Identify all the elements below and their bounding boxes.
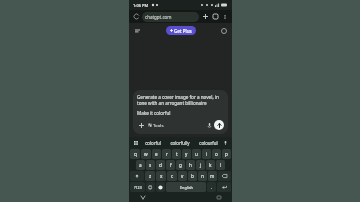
button[interactable]: . [207,182,216,192]
button[interactable]: l [216,160,225,170]
button[interactable]: colourful [194,137,222,148]
staticText: q [134,151,137,157]
button[interactable]: Enter [217,182,231,192]
button[interactable]: a [136,160,145,170]
staticText: i [206,151,208,157]
button[interactable]: x [156,171,166,181]
button[interactable]: Voice typing [222,139,229,146]
button[interactable]: ?123 [130,182,145,192]
button[interactable]: f [166,160,175,170]
button[interactable]: chatgpt.com [142,12,199,22]
button[interactable]: Clipboard [132,139,139,146]
button[interactable]: Shift [130,171,144,181]
staticText: p [225,151,228,157]
button[interactable]: Hide keyboard [130,193,155,201]
button[interactable]: i [202,149,211,159]
staticText: . [211,184,213,190]
staticText: ?123 [134,185,142,190]
button[interactable]: w [141,149,151,159]
button[interactable]: colorful [139,137,166,148]
button[interactable]: Emoji [146,182,155,192]
button[interactable]: z [145,171,155,181]
button[interactable]: o [212,149,221,159]
button[interactable]: t [172,149,181,159]
button[interactable]: Menu [133,26,142,35]
staticText: Generate a cover image for a novel, in t… [137,94,224,106]
button[interactable]: c [167,171,177,181]
button[interactable]: r [162,149,171,159]
staticText: s [149,162,152,168]
staticText: l [220,162,222,168]
button[interactable]: h [186,160,195,170]
button[interactable]: d [156,160,165,170]
button[interactable]: Switch keyboard [206,193,231,201]
button[interactable]: colorfully [166,137,194,148]
staticText: colorfully [170,140,190,146]
button[interactable]: New chat [219,26,228,35]
button[interactable]: q [130,149,140,159]
button[interactable]: n [198,171,207,181]
button[interactable]: Attach [137,121,146,130]
button[interactable]: m [208,171,217,181]
staticText: 1:06 PM [133,3,149,8]
staticText: colourful [199,140,218,146]
staticText: colorful [145,140,161,146]
staticText: ☺ [148,185,153,190]
button[interactable]: s [146,160,155,170]
button[interactable]: v [178,171,187,181]
staticText: Make it colorful [137,110,171,116]
button[interactable]: More options [221,13,229,21]
staticText: n [201,173,204,179]
button[interactable]: Tools [147,121,165,129]
staticText: j [200,162,202,168]
button[interactable]: English [166,182,206,192]
staticText: v [181,173,184,179]
button[interactable]: e [152,149,161,159]
button[interactable]: Assistant [156,182,165,192]
button[interactable]: Get Plus [166,26,196,35]
button[interactable]: k [206,160,215,170]
staticText: k [209,162,212,168]
staticText: e [155,151,158,157]
staticText: h [189,162,192,168]
staticText: English [180,185,193,190]
button[interactable]: New tab [201,12,210,21]
staticText: u [195,151,198,157]
staticText: a [139,162,142,168]
staticText: g [179,162,182,168]
button[interactable]: Reload [132,12,141,21]
staticText: d [159,162,162,168]
staticText: Get Plus [174,28,192,34]
staticText: t [176,151,178,157]
staticText: b [191,173,194,179]
staticText: chatgpt.com [145,14,172,20]
button[interactable]: j [196,160,205,170]
button[interactable]: y [182,149,191,159]
staticText: f [170,162,172,168]
button[interactable]: Generate a cover image for a novel, in t… [133,90,228,134]
staticText: x [160,173,163,179]
staticText: c [171,173,174,179]
button[interactable]: u [192,149,201,159]
button[interactable]: b [188,171,197,181]
staticText: y [185,151,188,157]
staticText: o [215,151,218,157]
button[interactable]: Backspace [218,171,231,181]
staticText: Tools [153,122,164,128]
staticText: r [166,151,168,157]
button[interactable]: g [176,160,185,170]
button[interactable]: p [222,149,231,159]
staticText: z [149,173,152,179]
button[interactable]: Voice input [205,121,213,129]
button[interactable]: Send [214,120,224,130]
staticText: w [144,151,148,157]
staticText: m [210,173,215,179]
button[interactable]: Tabs [211,12,220,21]
